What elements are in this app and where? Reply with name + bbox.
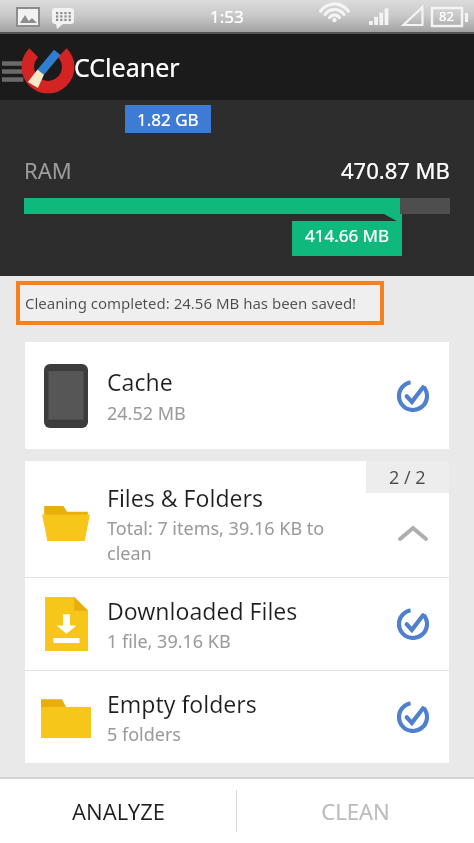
staticText: 2 / 2 xyxy=(389,465,426,490)
staticText: 82 xyxy=(439,7,454,25)
button[interactable]: CLEAN xyxy=(237,779,474,843)
staticText: Empty folders xyxy=(107,688,257,719)
staticText: ANALYZE xyxy=(72,796,165,826)
button[interactable]: Cleaning completed: 24.56 MB has been sa… xyxy=(16,281,384,325)
button[interactable]: 2 / 2 xyxy=(25,461,449,577)
button[interactable]: Cache selected xyxy=(377,342,449,449)
staticText: 24.52 MB xyxy=(107,401,186,426)
staticText: RAM xyxy=(24,155,72,185)
staticText: 470.87 MB xyxy=(341,155,450,185)
staticText: 1 file, 39.16 KB xyxy=(107,629,231,654)
staticText: Cleaning completed: 24.56 MB has been sa… xyxy=(25,293,357,313)
staticText: CLEAN xyxy=(321,796,390,826)
button[interactable]: Collapse group xyxy=(377,461,449,577)
button[interactable]: Empty folders xyxy=(25,671,449,763)
button[interactable]: Downloaded Files xyxy=(25,578,449,670)
staticText: 1.82 GB xyxy=(137,108,199,131)
button[interactable]: Open navigation menu xyxy=(2,54,28,80)
staticText: CCleaner xyxy=(74,50,180,84)
staticText: Downloaded Files xyxy=(107,595,298,626)
staticText: 1:53 xyxy=(210,5,244,28)
staticText: Cache xyxy=(107,366,173,397)
staticText: 5 folders xyxy=(107,722,181,747)
staticText: Total: 7 items, 39.16 KB to clean xyxy=(107,516,371,566)
button[interactable]: Empty folders selected xyxy=(377,671,449,763)
button[interactable]: Cache xyxy=(25,342,449,449)
button[interactable]: ANALYZE xyxy=(0,779,236,843)
staticText: Files & Folders xyxy=(107,482,264,513)
button[interactable]: Downloaded Files selected xyxy=(377,578,449,670)
staticText: 414.66 MB xyxy=(305,224,390,247)
